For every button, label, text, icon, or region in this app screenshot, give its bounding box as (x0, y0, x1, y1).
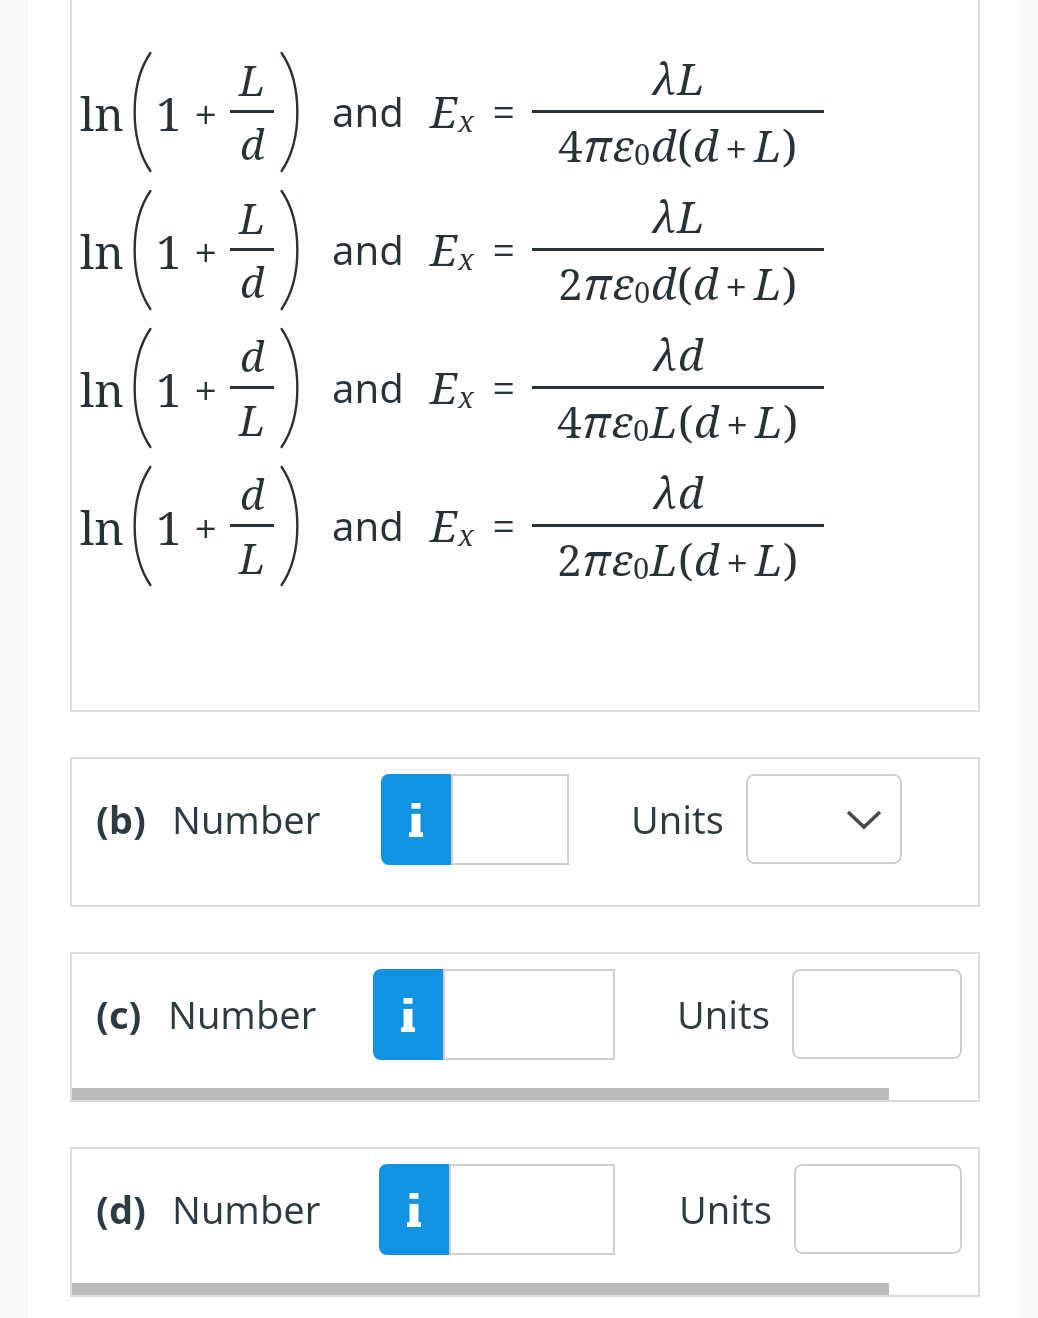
staticText: d (651, 253, 677, 313)
staticText: d (693, 115, 719, 175)
staticText: λ (653, 462, 678, 522)
staticText: 0 (634, 272, 651, 312)
staticText: L (755, 529, 783, 589)
button[interactable]: Units selector (794, 1164, 962, 1254)
staticText: ( (678, 391, 694, 451)
staticText: d (240, 327, 265, 384)
staticText: L (754, 115, 782, 175)
button[interactable]: Info (373, 969, 443, 1060)
staticText: Units (677, 988, 770, 1040)
staticText: + (194, 85, 218, 142)
staticText: x (458, 239, 474, 279)
staticText: Units (631, 793, 724, 845)
staticText: ε (612, 253, 634, 313)
staticText: Units (679, 1183, 772, 1235)
staticText: ) (782, 115, 798, 175)
staticText: ln (80, 220, 124, 283)
staticText: x (458, 101, 474, 141)
staticText: L (239, 189, 266, 246)
staticText: L (239, 51, 266, 108)
staticText: + (726, 535, 749, 589)
staticText: ε (611, 391, 633, 451)
staticText: 1 (156, 358, 182, 421)
staticText: L (755, 391, 783, 451)
staticText: π (582, 529, 611, 589)
button[interactable]: Units selector (792, 969, 962, 1059)
staticText: ( (678, 529, 694, 589)
staticText: x (458, 377, 474, 417)
staticText: d (694, 391, 720, 451)
staticText: + (194, 499, 218, 556)
staticText: = (492, 83, 516, 140)
button[interactable]: (c) (70, 952, 980, 1102)
staticText: 1 (156, 82, 182, 145)
staticText: λ (652, 186, 677, 246)
staticText: E (430, 357, 458, 417)
staticText: (c) (96, 988, 142, 1040)
staticText: (d) (96, 1183, 146, 1235)
staticText: 0 (634, 134, 651, 174)
staticText: L (650, 391, 678, 451)
staticText: and (332, 360, 404, 414)
staticText: E (430, 81, 458, 141)
staticText: ) (783, 529, 799, 589)
staticText: ( (677, 115, 693, 175)
staticText: 1 (156, 220, 182, 283)
staticText: 0 (633, 410, 650, 450)
staticText: d (693, 253, 719, 313)
button[interactable]: Info (381, 774, 451, 865)
staticText: Number (172, 793, 321, 845)
staticText: λ (653, 324, 678, 384)
staticText: d (678, 462, 704, 522)
staticText: ε (612, 115, 634, 175)
staticText: + (725, 121, 748, 175)
staticText: x (458, 515, 474, 555)
staticText: L (754, 253, 782, 313)
staticText: ln (80, 358, 124, 421)
staticText: + (194, 361, 218, 418)
button[interactable]: (d) (70, 1147, 980, 1297)
staticText: d (694, 529, 720, 589)
staticText: E (430, 495, 458, 555)
staticText: d (240, 465, 265, 522)
staticText: π (582, 391, 611, 451)
staticText: 2 (557, 529, 582, 589)
button[interactable]: Units selector (746, 774, 902, 864)
staticText: d (678, 324, 704, 384)
staticText: L (239, 391, 266, 448)
staticText: d (240, 253, 265, 310)
staticText: = (492, 221, 516, 278)
staticText: 4 (557, 391, 582, 451)
staticText: = (492, 497, 516, 554)
staticText: = (492, 359, 516, 416)
staticText: ) (783, 391, 799, 451)
staticText: Number (168, 988, 317, 1040)
staticText: 4 (558, 115, 583, 175)
staticText: π (583, 253, 612, 313)
staticText: 1 (156, 496, 182, 559)
staticText: 2 (558, 253, 583, 313)
staticText: 0 (633, 548, 650, 588)
staticText: ln (80, 496, 124, 559)
staticText: L (239, 529, 266, 586)
staticText: and (332, 84, 404, 138)
staticText: + (726, 397, 749, 451)
button[interactable] (443, 969, 615, 1060)
staticText: (b) (96, 793, 146, 845)
staticText: ln (80, 82, 124, 145)
staticText: L (650, 529, 678, 589)
staticText: L (677, 186, 705, 246)
staticText: + (194, 223, 218, 280)
button[interactable] (451, 774, 569, 865)
staticText: π (583, 115, 612, 175)
staticText: + (725, 259, 748, 313)
staticText: E (430, 219, 458, 279)
staticText: Number (172, 1183, 321, 1235)
staticText: d (651, 115, 677, 175)
staticText: ε (611, 529, 633, 589)
button[interactable]: Info (379, 1164, 449, 1255)
button[interactable]: (b) (70, 757, 980, 907)
staticText: d (240, 115, 265, 172)
button[interactable] (449, 1164, 615, 1255)
staticText: ( (677, 253, 693, 313)
